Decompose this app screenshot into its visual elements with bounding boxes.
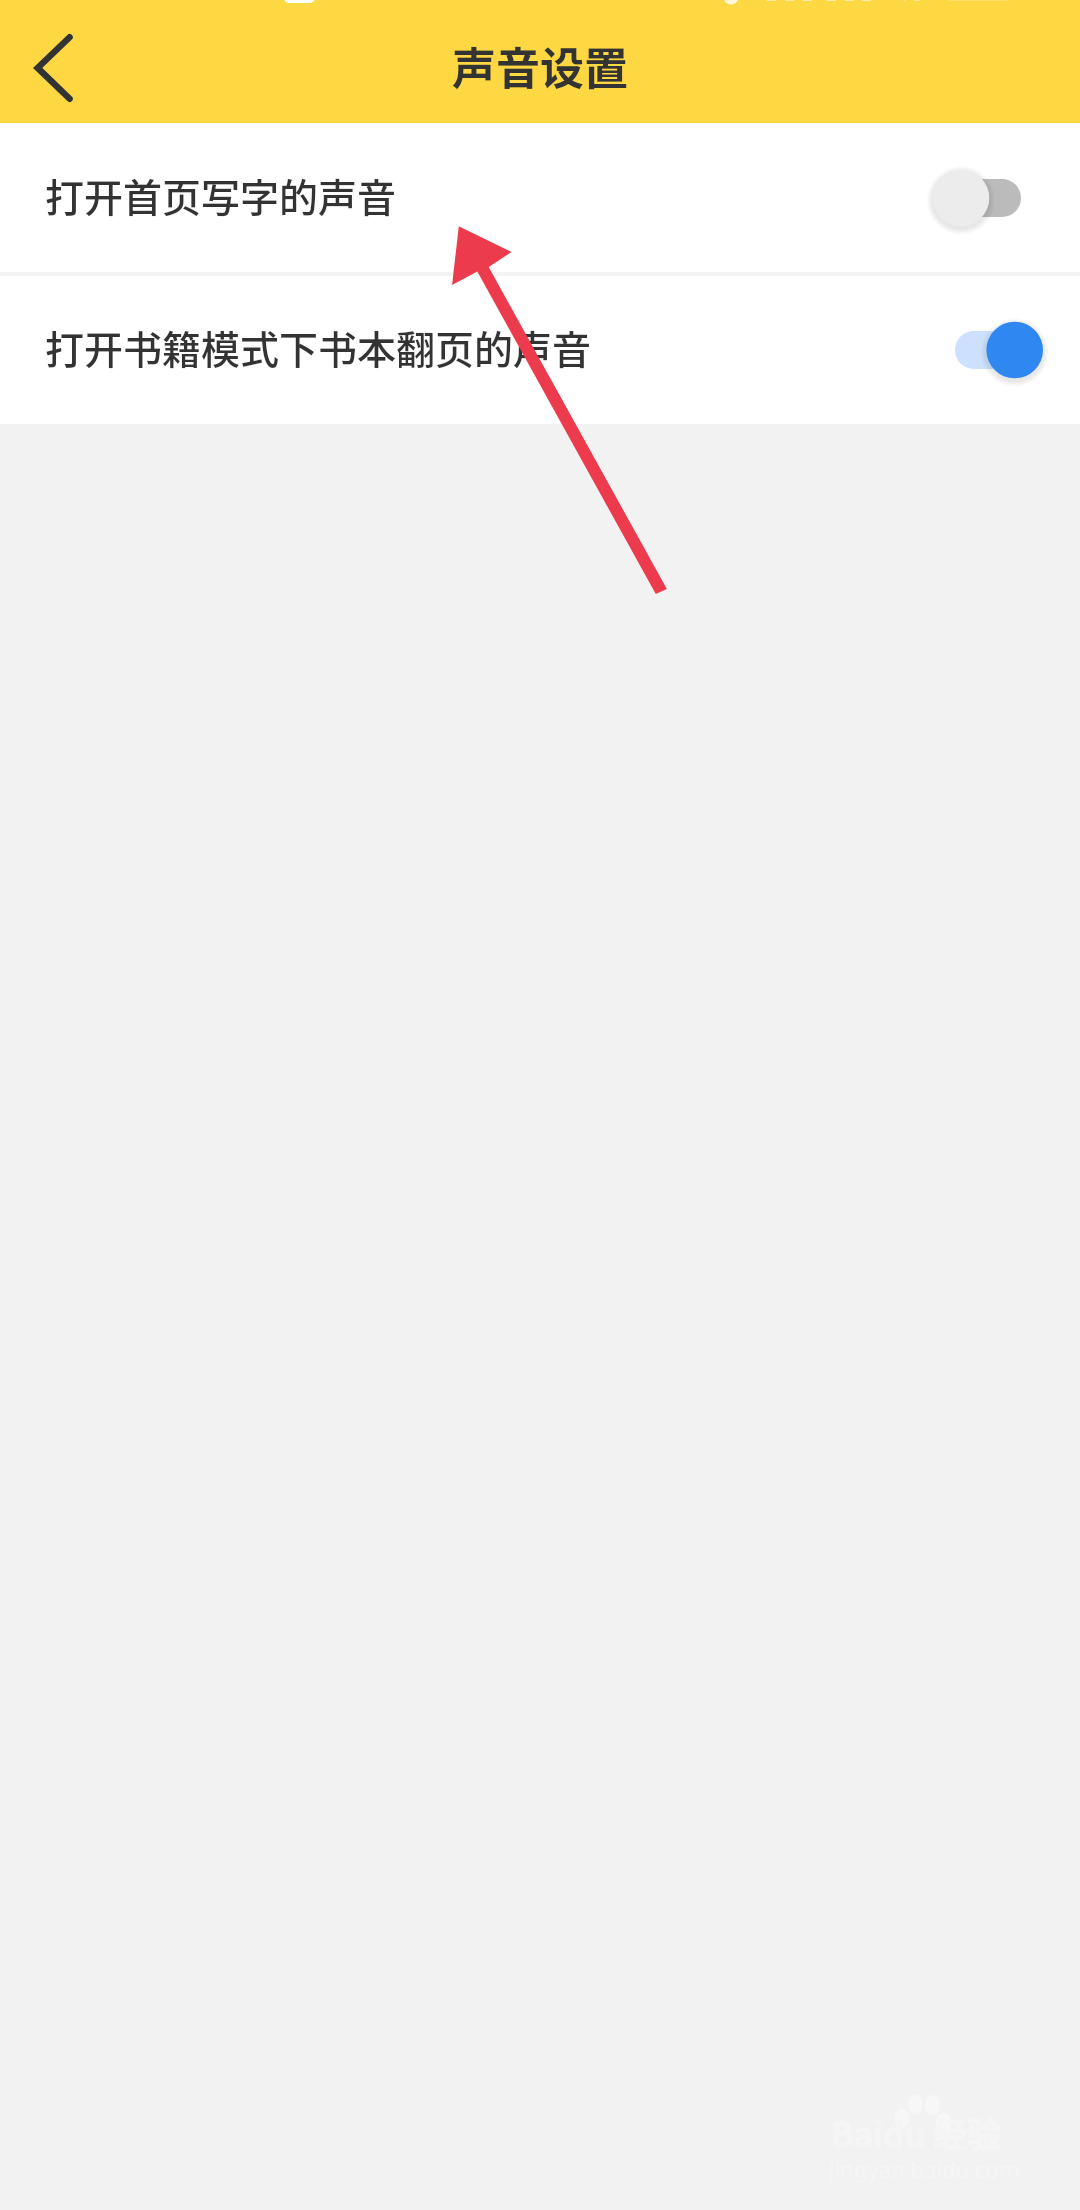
button[interactable]: 打开首页写字的声音 (0, 123, 1080, 272)
button[interactable]: Turn on (933, 163, 1043, 233)
button[interactable]: 打开书籍模式下书本翻页的声音 (0, 276, 1080, 424)
staticText: 打开首页写字的声音 (45, 167, 397, 223)
button[interactable]: Turn off (933, 315, 1043, 385)
button[interactable]: Back (0, 0, 110, 123)
staticText: 打开书籍模式下书本翻页的声音 (45, 319, 592, 375)
staticText: 声音设置 (452, 34, 628, 98)
